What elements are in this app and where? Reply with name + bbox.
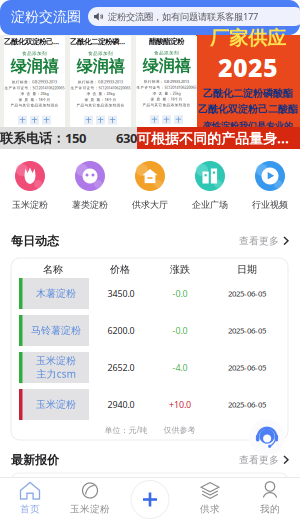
staticText: 企业广场 <box>192 199 228 210</box>
staticText: 绿润禧 <box>10 56 58 76</box>
button[interactable]: 查看更多 <box>239 235 289 247</box>
staticText: 绿润禧 <box>142 56 190 76</box>
staticText: 乙酰化二淀粉磷酸酯 <box>203 87 293 100</box>
staticText: 净 含 量：25kg <box>86 91 114 96</box>
staticText: 2025-06-05 <box>228 399 266 410</box>
staticText: 薯类淀粉 <box>72 199 108 210</box>
button[interactable]: 木薯淀粉 <box>11 278 288 312</box>
staticText: 单位：元/吨 <box>104 425 147 435</box>
staticText: 我的 <box>260 503 280 515</box>
staticText: 首页 <box>20 503 40 515</box>
staticText: 查看更多 <box>239 454 279 466</box>
staticText: 淀粉交流圈，如有问题请联系客服177 <box>108 10 258 23</box>
staticText: 绿润禧 <box>76 56 124 76</box>
staticText: 木薯淀粉 <box>36 287 76 300</box>
button[interactable]: 玉米淀粉 <box>0 161 60 223</box>
staticText: 6200.0 <box>107 324 134 336</box>
staticText: +10.0 <box>169 398 191 410</box>
button[interactable]: 企业广场 <box>180 161 240 223</box>
button[interactable]: 查看更多 <box>239 454 289 466</box>
staticText: 淀粉交流圈 <box>11 8 81 26</box>
staticText: 生产许可证号：SC12014106220065 <box>70 85 130 90</box>
button[interactable]: 行业视频 <box>240 161 300 223</box>
staticText: 生产许可证号：SC12014106220065 <box>136 85 196 90</box>
staticText: 马铃薯淀粉 <box>31 324 81 337</box>
staticText: 乙酰化双淀粉己二酸酯 <box>4 36 65 46</box>
staticText: 厂家供应 <box>210 26 286 50</box>
button[interactable]: 供求 <box>180 473 240 530</box>
staticText: 乙酰化双淀粉己二酸酯 <box>198 103 298 115</box>
staticText: 2025-06-05 <box>228 325 266 336</box>
button[interactable]: 玉米淀粉 <box>11 352 288 386</box>
button[interactable]: 我的 <box>240 473 300 530</box>
staticText: 3450.0 <box>107 287 134 299</box>
staticText: 保 质 期：18个月 <box>150 97 182 102</box>
button[interactable]: 马铃薯淀粉 <box>11 315 288 349</box>
staticText: 联系电话：150 630 <box>0 129 137 147</box>
staticText: -0.0 <box>172 287 187 299</box>
staticText: 名称 <box>43 263 63 276</box>
staticText: 涨跌 <box>170 263 190 276</box>
staticText: 净 含 量：25kg <box>152 91 180 96</box>
staticText: 2652.0 <box>107 361 134 373</box>
staticText: 玉米淀粉 <box>12 199 48 210</box>
button[interactable]: 薯类淀粉 <box>60 161 120 223</box>
staticText: 食品添加剂 <box>154 50 179 56</box>
staticText: 产品与其它食品添加剂混合 <box>142 103 190 107</box>
staticText: 可根据不同的产品量身定制 <box>137 128 300 147</box>
staticText: -0.0 <box>172 324 187 336</box>
staticText: 2025 <box>218 50 278 84</box>
staticText: 2940.0 <box>107 398 134 410</box>
staticText: 供求 <box>200 503 220 515</box>
staticText: 产品与其它食品添加剂混合 <box>76 103 124 108</box>
staticText: 产品与其它食品添加剂混合 <box>10 103 58 108</box>
staticText: 每日动态 <box>11 233 59 248</box>
staticText: 执行标准：GB 29933-2013 <box>12 79 57 84</box>
staticText: 查看更多 <box>239 235 279 247</box>
staticText: 执行标准：GB 29933-2013 <box>144 79 189 84</box>
staticText: 行业视频 <box>252 199 288 210</box>
staticText: 价格 <box>110 263 130 276</box>
staticText: 玉米淀粉 <box>70 503 110 515</box>
button[interactable]: 玉米淀粉 <box>60 473 120 530</box>
staticText: 供求大厅 <box>132 199 168 210</box>
staticText: -4.0 <box>172 361 187 373</box>
button[interactable]: 首页 <box>0 473 60 530</box>
staticText: 净 含 量：25kg <box>20 91 48 96</box>
staticText: 2025-06-05 <box>228 288 266 299</box>
staticText: 保 质 期：18个月 <box>18 97 50 102</box>
staticText: 玉米淀粉 <box>36 398 76 411</box>
staticText: 食品添加剂 <box>22 50 47 56</box>
button[interactable]: 发布 <box>120 477 180 530</box>
staticText: 玉米淀粉 <box>36 354 76 367</box>
staticText: 最新报价 <box>11 452 59 467</box>
staticText: 乙酰化二淀粉磷酸酯 <box>70 36 131 46</box>
button[interactable]: 联系客服 <box>249 419 285 455</box>
staticText: 保 质 期：18个月 <box>84 97 116 102</box>
staticText: 食品添加剂 <box>88 50 113 56</box>
staticText: 主力csm <box>36 367 75 381</box>
button[interactable]: 供求大厅 <box>120 161 180 223</box>
staticText: 生产许可证号：SC12014106220065 <box>4 85 64 90</box>
staticText: 变性淀粉我们是专业的 <box>203 120 293 132</box>
staticText: 2025-06-05 <box>228 362 266 373</box>
staticText: 醋酸酯淀粉 <box>149 37 184 46</box>
staticText: 仅供参考 <box>163 425 195 435</box>
staticText: 日期 <box>237 263 257 276</box>
staticText: 执行标准：GB 29933-2013 <box>78 79 123 84</box>
button[interactable]: 玉米淀粉 <box>11 389 288 423</box>
